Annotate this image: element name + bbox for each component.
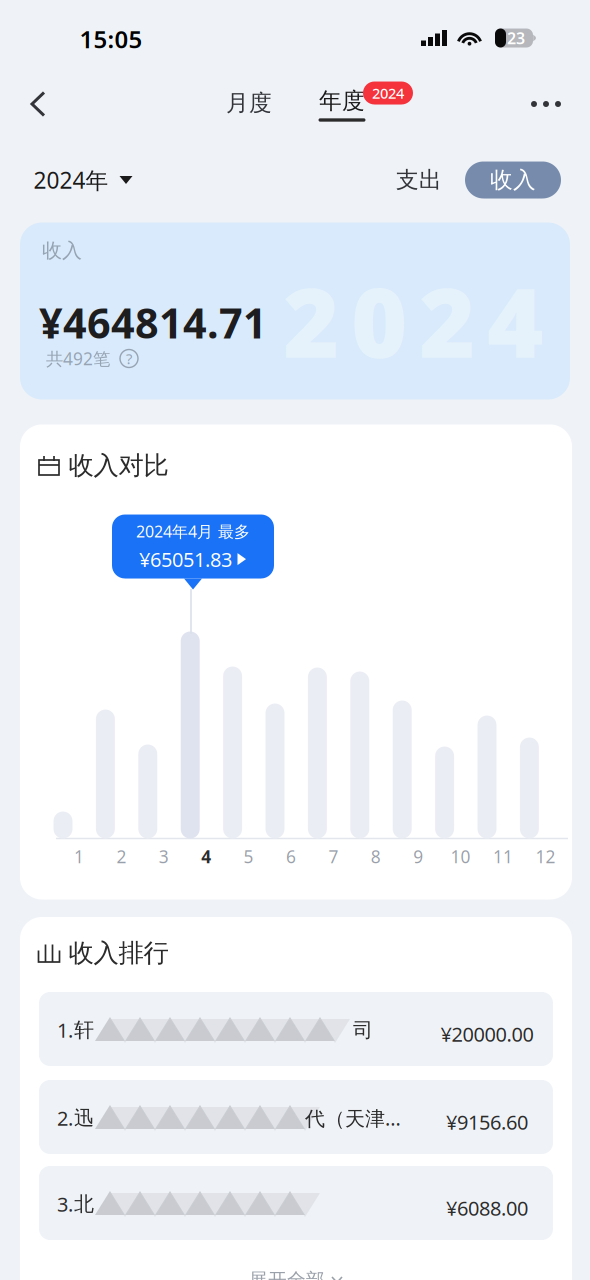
staticText: 10: [451, 845, 471, 868]
staticText: 5: [244, 845, 254, 868]
staticText: 2024: [283, 257, 543, 384]
staticText: 11: [493, 845, 513, 868]
staticText: 2024: [372, 83, 404, 103]
staticText: 23: [507, 27, 525, 49]
staticText: 收入: [42, 238, 82, 263]
staticText: 迅: [74, 1106, 94, 1130]
staticText: 15:05: [79, 23, 142, 55]
button[interactable]: 2.: [39, 1080, 553, 1154]
staticText: 共492笔: [46, 347, 110, 370]
button[interactable]: 年度: [307, 80, 377, 138]
staticText: 展开全部: [249, 1268, 325, 1280]
staticText: 司: [353, 1018, 373, 1042]
staticText: 收入对比: [68, 450, 168, 481]
staticText: ¥6088.00: [446, 1195, 528, 1221]
staticText: 月度: [226, 89, 272, 117]
button[interactable]: 收入: [465, 161, 561, 198]
staticText: 12: [535, 845, 555, 868]
staticText: 2024年4月 最多: [136, 521, 250, 542]
staticText: 北: [74, 1192, 94, 1216]
staticText: 4: [201, 845, 211, 868]
staticText: 年度: [319, 87, 365, 115]
button[interactable]: 支出: [389, 161, 449, 199]
staticText: 轩: [74, 1018, 94, 1042]
button[interactable]: 3.: [39, 1166, 553, 1240]
button[interactable]: 月度: [214, 81, 284, 125]
staticText: ?: [126, 349, 132, 368]
staticText: 支出: [396, 166, 442, 194]
staticText: 代（天津…: [305, 1105, 401, 1131]
staticText: 2: [116, 845, 126, 868]
button[interactable]: Back: [15, 81, 61, 127]
staticText: 8: [371, 845, 381, 868]
staticText: 3.: [57, 1191, 73, 1217]
staticText: ¥464814.71: [39, 295, 267, 350]
staticText: 1.: [57, 1017, 73, 1043]
staticText: ¥9156.60: [446, 1109, 528, 1135]
button[interactable]: 展开全部: [226, 1264, 366, 1280]
staticText: 3: [159, 845, 169, 868]
staticText: 2.: [57, 1105, 73, 1131]
button[interactable]: 2024年: [33, 160, 132, 200]
staticText: 6: [286, 845, 296, 868]
staticText: 7: [328, 845, 338, 868]
button[interactable]: More options: [521, 82, 571, 126]
staticText: ¥65051.83: [139, 546, 232, 572]
staticText: 收入: [490, 166, 536, 194]
staticText: 1: [74, 845, 84, 868]
staticText: 9: [413, 845, 423, 868]
staticText: 收入排行: [68, 937, 168, 968]
button[interactable]: 1.: [39, 992, 553, 1066]
staticText: 2024年: [33, 165, 108, 195]
staticText: ¥20000.00: [440, 1021, 533, 1047]
